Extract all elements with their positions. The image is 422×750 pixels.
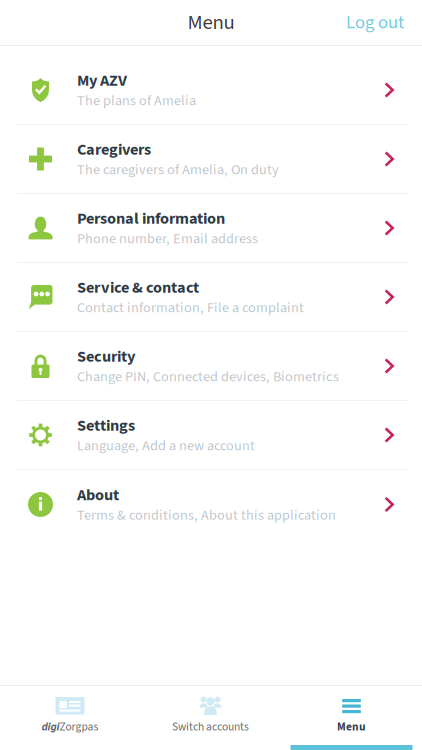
staticText: Settings (77, 414, 135, 437)
staticText: Caregivers (77, 138, 151, 161)
staticText: Contact information, File a complaint (77, 298, 304, 318)
staticText: Personal information (77, 207, 225, 230)
staticText: The caregivers of Amelia, On duty (77, 160, 279, 180)
staticText: Change PIN, Connected devices, Biometric… (77, 367, 339, 387)
button[interactable]: Log out (346, 9, 422, 36)
staticText: Phone number, Email address (77, 229, 258, 249)
button[interactable]: Settings (0, 401, 422, 470)
staticText: Log out (346, 9, 404, 36)
staticText: Zorgpas (59, 719, 98, 735)
staticText: Menu (187, 8, 234, 37)
staticText: My AZV (77, 69, 127, 92)
button[interactable]: Caregivers (0, 125, 422, 194)
button[interactable]: digi (0, 686, 140, 750)
staticText: Terms & conditions, About this applicati… (77, 505, 336, 525)
staticText: Menu (337, 719, 366, 735)
button[interactable]: Service & contact (0, 263, 422, 332)
button[interactable]: Security (0, 332, 422, 401)
button[interactable]: Switch accounts (140, 686, 281, 750)
staticText: Language, Add a new account (77, 436, 255, 456)
staticText: Security (77, 345, 135, 368)
staticText: digi (41, 719, 59, 735)
button[interactable]: Menu (281, 686, 422, 750)
staticText: Switch accounts (172, 719, 249, 735)
staticText: The plans of Amelia (77, 91, 196, 111)
staticText: About (77, 483, 119, 507)
button[interactable]: Personal information (0, 194, 422, 263)
button[interactable]: My AZV (0, 56, 422, 125)
staticText: Service & contact (77, 276, 199, 299)
button[interactable]: About (0, 470, 422, 539)
